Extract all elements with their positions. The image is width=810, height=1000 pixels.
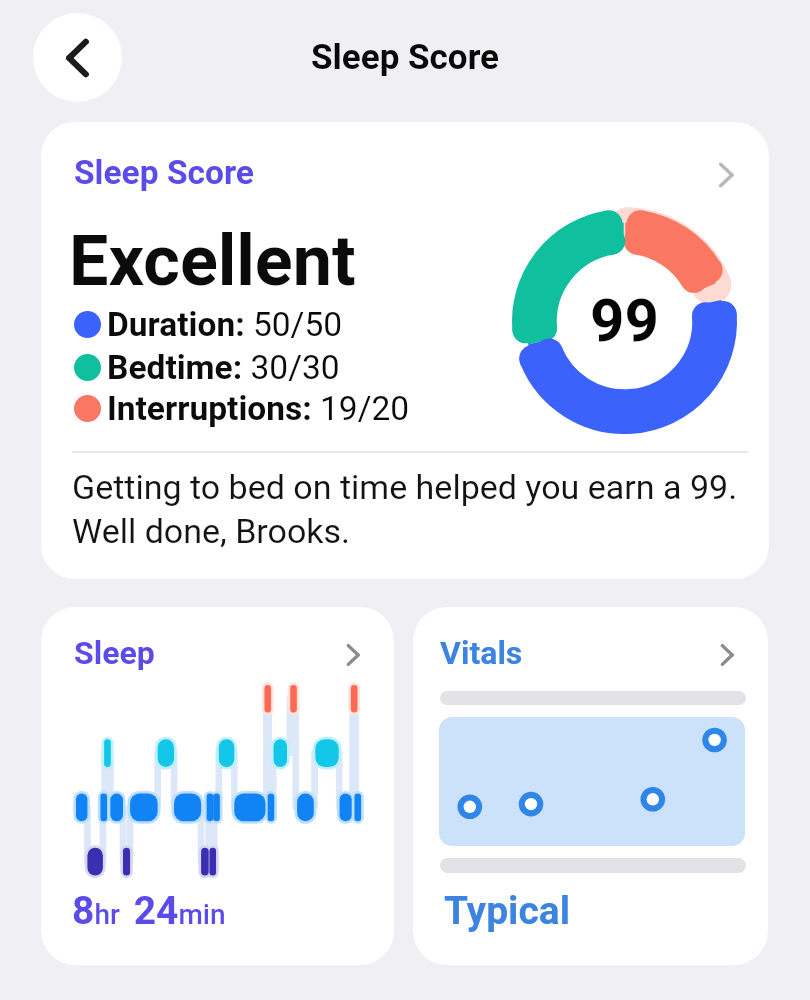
button[interactable]: Open vitals detail [706,634,748,676]
staticText: Bedtime: 30/30 [107,348,340,387]
button[interactable]: Open sleep detail [332,634,374,676]
staticText: Sleep Score [74,153,254,192]
staticText: 99 [590,285,659,355]
staticText: Sleep [74,634,155,672]
button[interactable]: Open sleep score detail [698,147,754,203]
staticText: Duration: 50/50 [107,305,343,344]
staticText: Getting to bed on time helped you earn a… [72,467,738,551]
staticText: Vitals [440,634,523,672]
staticText: Interruptions: 19/20 [107,389,410,428]
button[interactable]: Vitals [413,607,768,965]
staticText: Sleep Score [311,37,500,78]
button[interactable]: Back [33,13,122,102]
staticText: 8hr 24min [72,888,226,934]
staticText: Excellent [69,220,356,302]
button[interactable]: Sleep [41,607,394,965]
staticText: Typical [444,888,571,934]
button[interactable]: Sleep Score [41,122,769,579]
